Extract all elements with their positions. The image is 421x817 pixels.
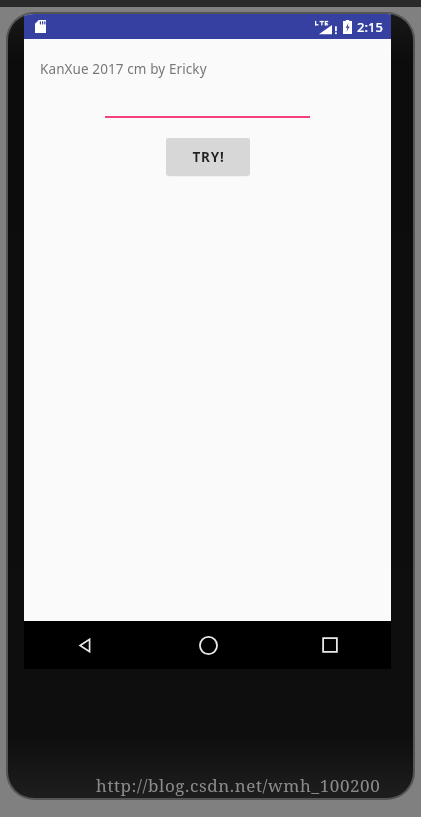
- staticText: TRY!: [192, 148, 225, 166]
- staticText: http://blog.csdn.net/wmh_100200: [96, 774, 381, 797]
- button[interactable]: [105, 94, 310, 118]
- button[interactable]: Back: [24, 621, 147, 669]
- button[interactable]: Recent apps: [269, 621, 391, 669]
- button[interactable]: Home: [147, 621, 269, 669]
- staticText: KanXue 2017 cm by Ericky: [40, 60, 207, 78]
- staticText: 2:15: [357, 18, 383, 36]
- button[interactable]: TRY!: [166, 138, 250, 175]
